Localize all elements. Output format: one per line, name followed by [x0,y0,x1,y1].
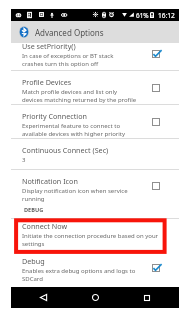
staticText: 3 [22,156,26,164]
staticText: Advanced Options [35,27,104,38]
staticText: Continuous Connect (Sec) [22,145,109,155]
button[interactable]: Priority Connection [11,105,179,139]
staticText: 16:12 [158,11,175,20]
staticText: Notification Icon [22,176,78,186]
staticText: Display notification icon when service r… [22,187,128,203]
button[interactable]: DEBUG [11,202,179,219]
button[interactable]: Continuous Connect (Sec) [11,139,179,170]
button[interactable]: Use setPriority() [11,43,179,71]
staticText: Enables extra debug options and logs to … [22,267,136,283]
staticText: Match profile devices and list only devi… [22,88,137,104]
button[interactable]: Back [23,287,63,308]
button[interactable]: Recent apps [127,287,167,308]
button[interactable]: Debug [11,253,179,287]
staticText: In case of exceptions or BT stack crashe… [22,52,114,68]
button[interactable]: Notification Icon [11,170,179,202]
staticText: Connect Now [22,221,68,231]
staticText: DEBUG [24,206,44,214]
staticText: Debug [22,256,45,266]
button[interactable]: Connect Now [11,219,179,253]
button[interactable]: Profile Devices [11,71,179,105]
staticText: Initiate the connection procedure based … [22,232,159,248]
staticText: Experimental feature to connect to avail… [22,122,126,138]
staticText: Profile Devices [22,77,72,87]
staticText: 61% [136,11,149,20]
staticText: Priority Connection [22,111,87,121]
button[interactable]: Home [75,287,115,308]
staticText: Use setPriority() [22,41,76,51]
